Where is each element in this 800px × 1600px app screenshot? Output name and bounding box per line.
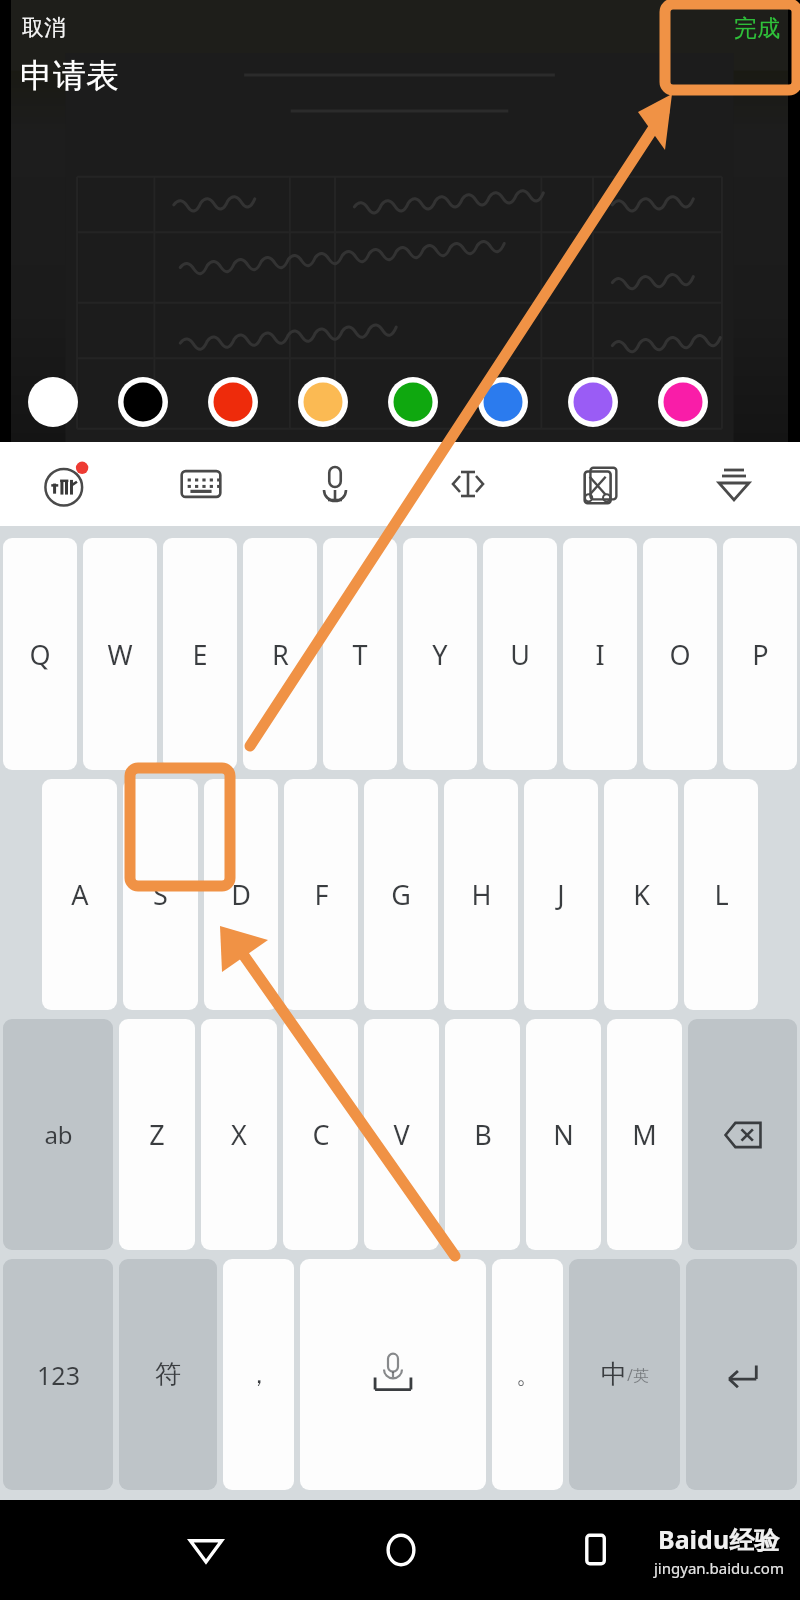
button[interactable]: R	[243, 538, 317, 770]
button[interactable]: I	[563, 538, 637, 770]
staticText: jingyan.baidu.com	[654, 1558, 784, 1578]
button[interactable]: P	[723, 538, 797, 770]
button[interactable]: 完成	[734, 14, 780, 43]
staticText: H	[471, 876, 492, 913]
staticText: L	[714, 876, 729, 913]
button[interactable]: Pen colour 6	[475, 374, 531, 430]
button[interactable]: 符	[119, 1259, 217, 1490]
button[interactable]: S	[123, 779, 198, 1010]
button[interactable]: Voice input	[268, 442, 401, 526]
button[interactable]: Input method	[0, 442, 134, 526]
staticText: O	[669, 636, 691, 673]
staticText: T	[352, 636, 368, 673]
button[interactable]: M	[607, 1019, 682, 1250]
staticText: Baidu经验	[658, 1522, 780, 1556]
button[interactable]: Home	[303, 1500, 498, 1600]
button[interactable]: B	[445, 1019, 520, 1250]
button[interactable]: Y	[403, 538, 477, 770]
staticText: ab	[44, 1118, 73, 1151]
staticText: P	[752, 636, 769, 673]
staticText: E	[192, 636, 208, 673]
staticText: V	[393, 1116, 410, 1153]
button[interactable]: F	[284, 779, 358, 1010]
button[interactable]: Clipboard	[534, 442, 667, 526]
button[interactable]: ab	[3, 1019, 113, 1250]
button[interactable]: W	[83, 538, 157, 770]
staticText: K	[633, 876, 650, 913]
staticText: G	[391, 876, 411, 913]
button[interactable]: Space	[300, 1259, 486, 1490]
button[interactable]: Pen colour 8	[655, 374, 711, 430]
button[interactable]: Pen colour 2	[115, 374, 171, 430]
button[interactable]: 中	[569, 1259, 680, 1490]
staticText: W	[107, 636, 133, 673]
staticText: 。	[516, 1360, 540, 1390]
staticText: 中	[601, 1358, 627, 1391]
button[interactable]: Pen colour 7	[565, 374, 621, 430]
staticText: 完成	[734, 14, 780, 43]
staticText: S	[153, 876, 168, 913]
staticText: R	[272, 636, 289, 673]
button[interactable]: H	[444, 779, 518, 1010]
staticText: N	[553, 1116, 574, 1153]
staticText: 申请表	[20, 55, 119, 97]
staticText: F	[314, 876, 329, 913]
staticText: 123	[37, 1358, 80, 1392]
staticText: B	[474, 1116, 492, 1153]
staticText: Y	[432, 636, 448, 673]
button[interactable]: Pen colour 4	[295, 374, 351, 430]
staticText: X	[231, 1116, 247, 1153]
staticText: C	[312, 1116, 330, 1153]
staticText: Z	[149, 1116, 165, 1153]
button[interactable]: Keyboard layout	[134, 442, 268, 526]
staticText: D	[231, 876, 251, 913]
button[interactable]: U	[483, 538, 557, 770]
button[interactable]: 。	[492, 1259, 563, 1490]
button[interactable]: T	[323, 538, 397, 770]
staticText: 符	[155, 1358, 181, 1391]
button[interactable]: Recent apps	[498, 1500, 693, 1600]
button[interactable]: K	[604, 779, 678, 1010]
button[interactable]: Hide keyboard	[667, 442, 800, 526]
button[interactable]: Pen colour 3	[205, 374, 261, 430]
staticText: Q	[29, 636, 51, 673]
staticText: A	[71, 876, 89, 913]
button[interactable]: V	[364, 1019, 439, 1250]
button[interactable]: Q	[3, 538, 77, 770]
staticText: /英	[627, 1364, 649, 1386]
button[interactable]: Backspace	[688, 1019, 797, 1250]
button[interactable]: A	[42, 779, 117, 1010]
button[interactable]: Move cursor	[401, 442, 534, 526]
button[interactable]: E	[163, 538, 237, 770]
button[interactable]: Pen colour 1	[25, 374, 81, 430]
button[interactable]: Pen colour 5	[385, 374, 441, 430]
button[interactable]: Back	[108, 1500, 303, 1600]
button[interactable]: D	[204, 779, 278, 1010]
staticText: U	[510, 636, 530, 673]
button[interactable]: 123	[3, 1259, 113, 1490]
button[interactable]: Z	[119, 1019, 195, 1250]
staticText: M	[632, 1116, 657, 1153]
button[interactable]: O	[643, 538, 717, 770]
button[interactable]: G	[364, 779, 438, 1010]
button[interactable]: N	[526, 1019, 601, 1250]
button[interactable]: X	[201, 1019, 277, 1250]
staticText: J	[557, 876, 565, 913]
staticText: I	[595, 636, 605, 673]
button[interactable]: J	[524, 779, 598, 1010]
button[interactable]: L	[684, 779, 758, 1010]
button[interactable]: C	[283, 1019, 358, 1250]
button[interactable]: Enter	[686, 1259, 797, 1490]
button[interactable]: ，	[223, 1259, 294, 1490]
staticText: ，	[247, 1360, 271, 1390]
button[interactable]: 取消	[22, 14, 66, 42]
